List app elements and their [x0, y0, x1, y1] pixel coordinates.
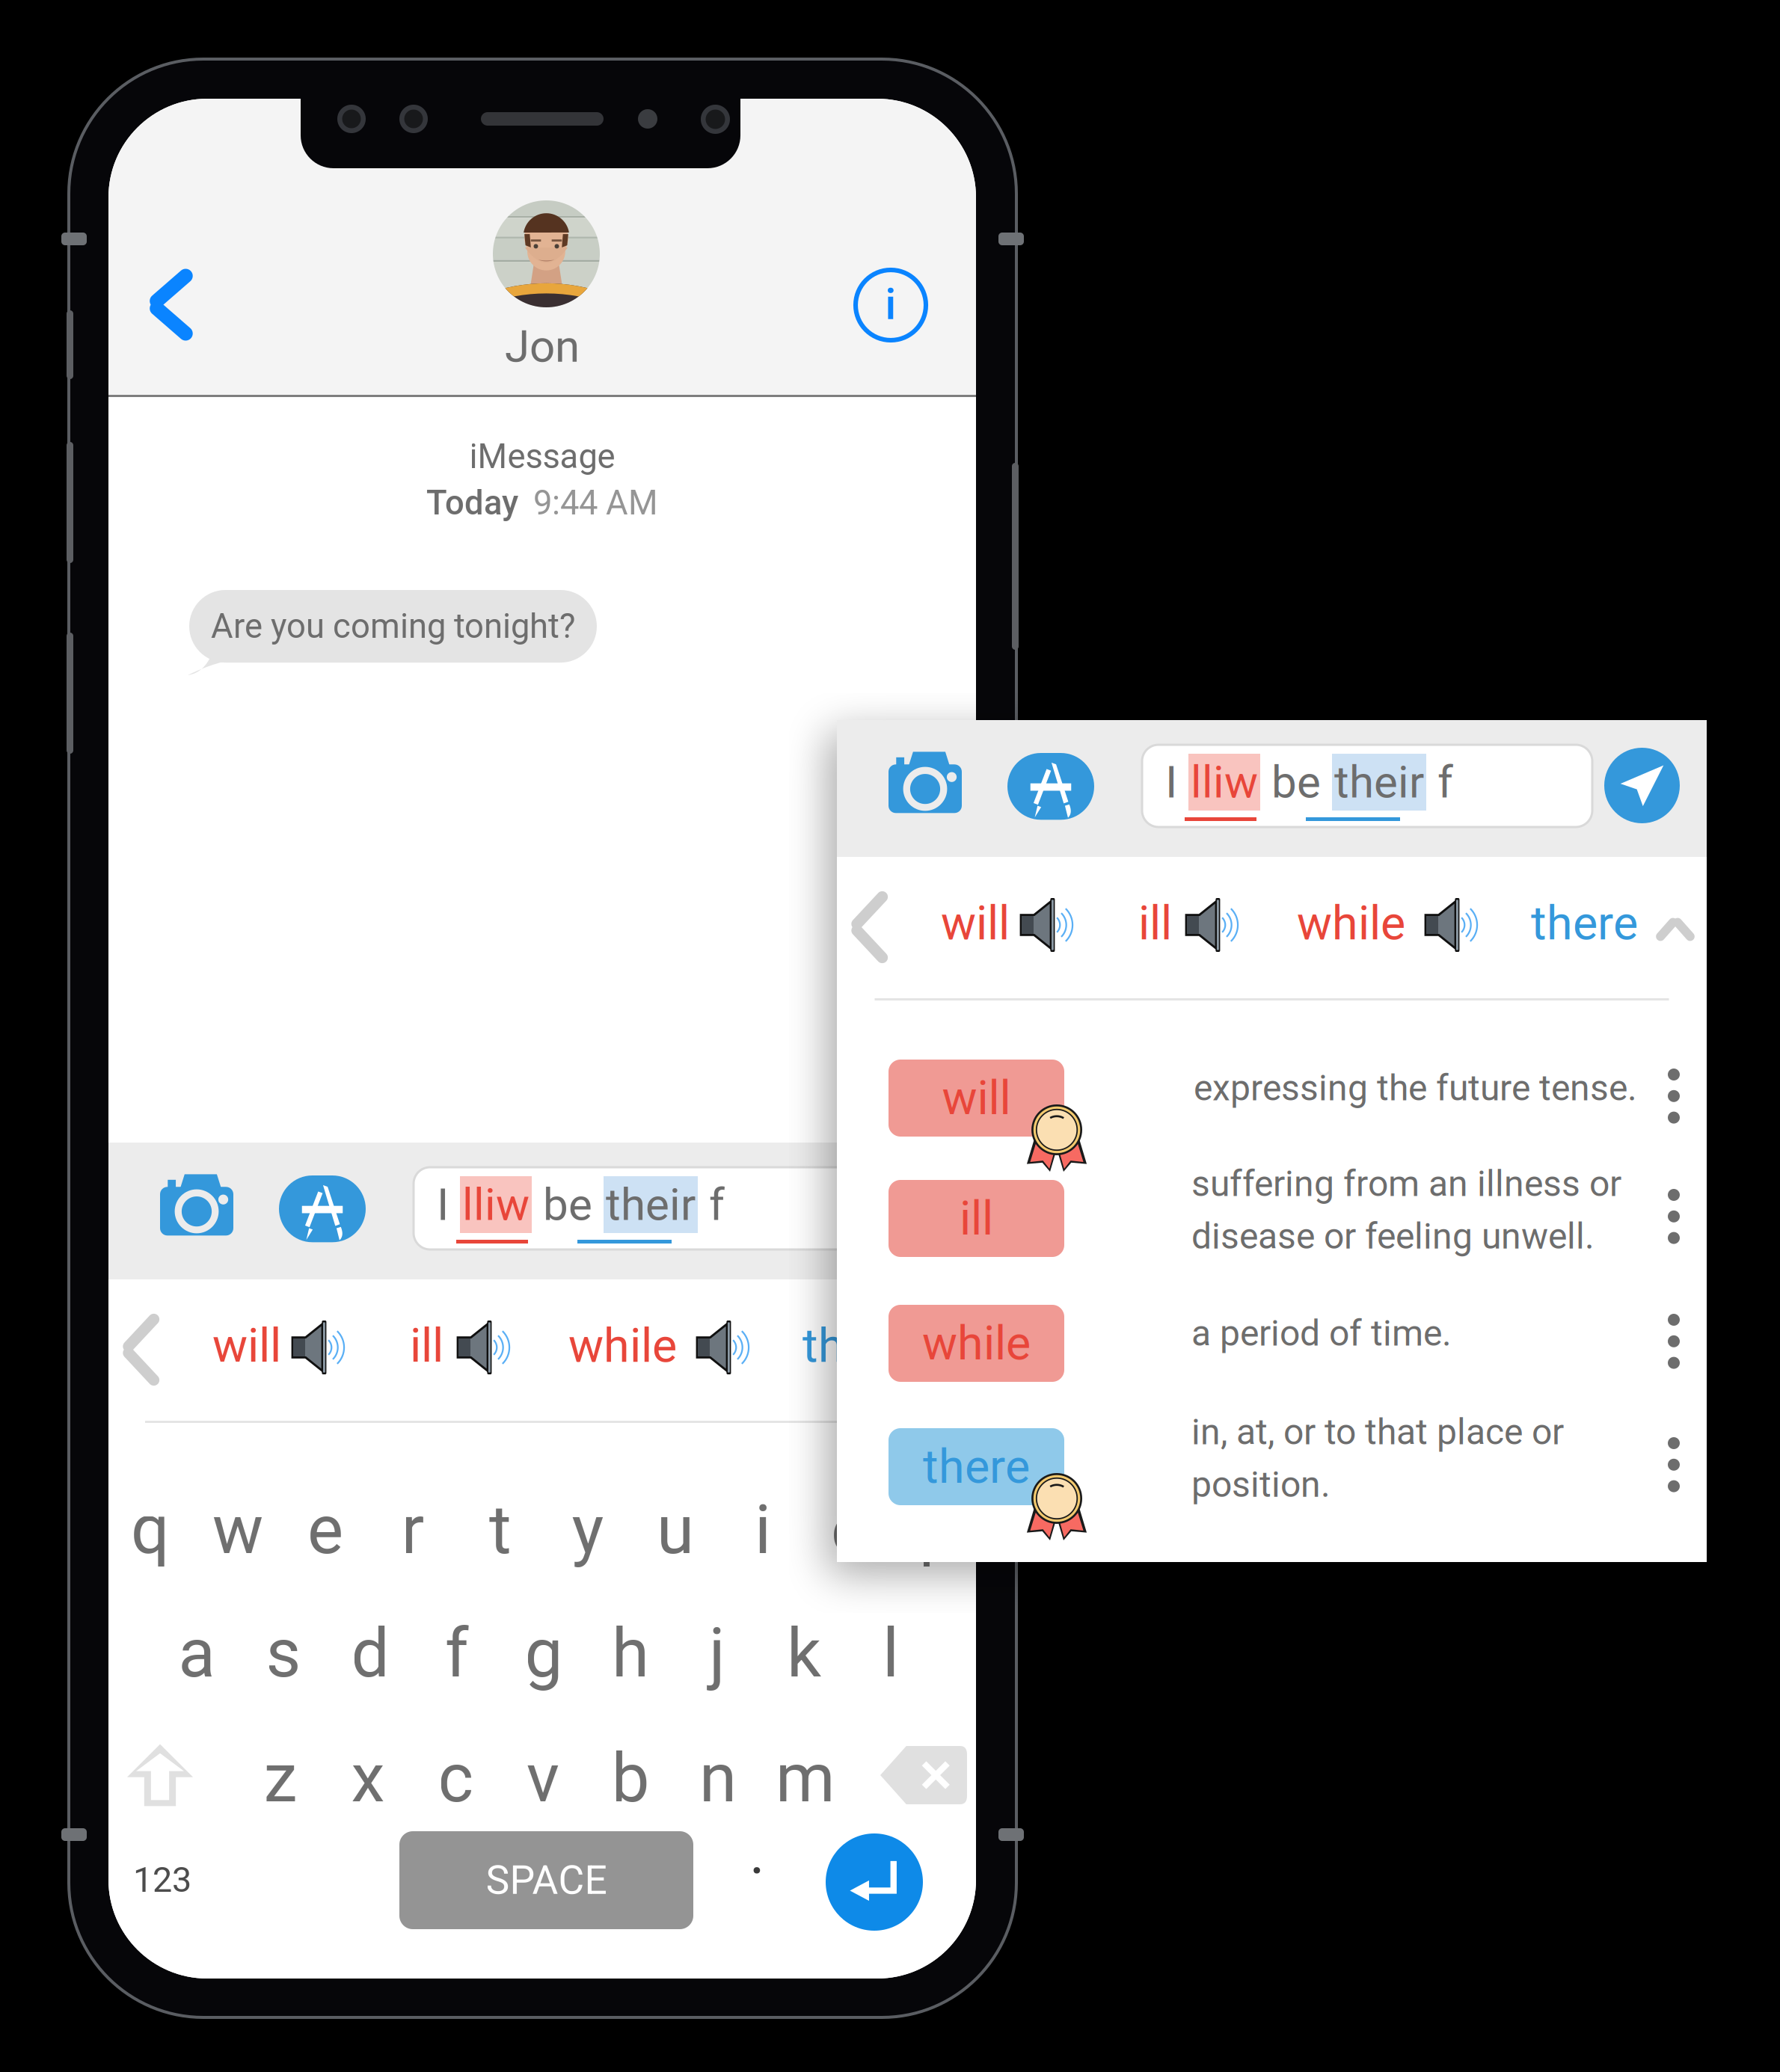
staticText: y	[572, 1490, 604, 1570]
button[interactable]: w	[193, 1487, 283, 1573]
staticText: I	[1165, 756, 1188, 808]
staticText: Are you coming tonight?	[211, 606, 575, 646]
button[interactable]: g	[499, 1610, 589, 1697]
staticText: be	[532, 1178, 604, 1231]
button[interactable]: k	[759, 1610, 849, 1697]
staticText: SPACE	[486, 1857, 607, 1904]
staticText: 123	[133, 1859, 191, 1900]
staticText: q	[131, 1490, 170, 1570]
staticText: r	[401, 1490, 424, 1570]
staticText: Today	[426, 483, 518, 523]
button[interactable]: Camera	[150, 1163, 244, 1246]
staticText: a	[178, 1614, 215, 1693]
staticText: u	[657, 1490, 694, 1570]
staticText: there	[802, 1318, 909, 1373]
staticText: z	[264, 1738, 297, 1818]
staticText: will	[941, 896, 1010, 951]
staticText: while	[1297, 896, 1405, 951]
button[interactable]: y	[543, 1487, 633, 1573]
button[interactable]: c	[411, 1735, 500, 1822]
staticText: their	[1334, 756, 1424, 808]
button[interactable]: 123	[102, 1835, 222, 1925]
staticText: be	[1260, 756, 1332, 808]
button[interactable]: ·	[734, 1827, 779, 1916]
button[interactable]: x	[323, 1735, 413, 1822]
button[interactable]: b	[586, 1735, 675, 1822]
button[interactable]: r	[368, 1487, 458, 1573]
staticText: ·	[749, 1838, 764, 1905]
staticText: f	[1426, 756, 1453, 808]
button[interactable]: Send	[1063, 1170, 1138, 1246]
staticText: a period of time.	[1191, 1312, 1452, 1354]
button[interactable]: a	[152, 1610, 242, 1697]
button[interactable]: i	[718, 1487, 808, 1573]
staticText: ill	[960, 1191, 993, 1246]
button[interactable]: p	[893, 1487, 983, 1573]
staticText: their	[606, 1178, 696, 1231]
staticText: position.	[1191, 1463, 1331, 1506]
staticText: lliw	[1191, 756, 1258, 808]
staticText: m	[776, 1738, 835, 1818]
staticText: i	[755, 1490, 771, 1570]
staticText: there	[1531, 896, 1638, 951]
button[interactable]: Shift	[111, 1727, 209, 1824]
button[interactable]: s	[239, 1610, 328, 1697]
staticText: while	[568, 1318, 677, 1373]
button[interactable]: m	[761, 1735, 850, 1822]
button[interactable]: e	[280, 1487, 370, 1573]
button[interactable]: l	[846, 1610, 936, 1697]
staticText: will	[942, 1071, 1011, 1126]
staticText: d	[351, 1614, 389, 1693]
button[interactable]: Camera	[878, 741, 972, 823]
button[interactable]: o	[805, 1487, 895, 1573]
staticText: expressing the future tense.	[1194, 1067, 1637, 1109]
button[interactable]: d	[325, 1610, 415, 1697]
button[interactable]: SPACE	[399, 1831, 693, 1929]
button[interactable]: Details	[831, 245, 951, 365]
button[interactable]: Send	[1604, 748, 1680, 823]
button[interactable]: t	[455, 1487, 545, 1573]
staticText: ill	[410, 1318, 444, 1373]
button[interactable]: n	[673, 1735, 763, 1822]
staticText: p	[919, 1490, 957, 1570]
staticText: t	[489, 1490, 512, 1570]
staticText: k	[787, 1614, 821, 1693]
staticText: e	[307, 1490, 343, 1570]
staticText: v	[527, 1738, 559, 1818]
staticText: iMessage	[469, 437, 615, 476]
button[interactable]: u	[630, 1487, 720, 1573]
staticText: c	[438, 1738, 473, 1818]
staticText: in, at, or to that place or	[1191, 1411, 1564, 1453]
button[interactable]: Back	[130, 242, 227, 367]
staticText: while	[922, 1316, 1031, 1371]
staticText: j	[709, 1614, 725, 1693]
button[interactable]: Apps	[998, 744, 1103, 829]
staticText: s	[266, 1614, 301, 1693]
button[interactable]: q	[105, 1487, 195, 1573]
button[interactable]: h	[586, 1610, 675, 1697]
staticText: x	[351, 1738, 385, 1818]
button[interactable]: z	[236, 1735, 325, 1822]
staticText: f	[698, 1178, 725, 1231]
staticText: there	[923, 1439, 1030, 1494]
staticText: will	[212, 1318, 281, 1373]
staticText: lliw	[462, 1178, 530, 1231]
staticText: Jon	[505, 320, 580, 373]
staticText: suffering from an illness or	[1191, 1163, 1621, 1205]
staticText: b	[611, 1738, 650, 1818]
staticText: ill	[1138, 896, 1172, 951]
staticText: h	[612, 1614, 649, 1693]
staticText: n	[699, 1738, 737, 1818]
staticText: g	[525, 1614, 563, 1693]
staticText: o	[831, 1490, 870, 1570]
staticText: f	[445, 1614, 469, 1693]
button[interactable]: Apps	[270, 1166, 375, 1251]
staticText: l	[883, 1614, 899, 1693]
button[interactable]: f	[412, 1610, 502, 1697]
button[interactable]: v	[498, 1735, 588, 1822]
staticText: 9:44 AM	[533, 483, 658, 523]
button[interactable]: j	[672, 1610, 762, 1697]
staticText: w	[212, 1490, 263, 1570]
button[interactable]: Delete	[875, 1727, 972, 1824]
button[interactable]: Return	[826, 1833, 923, 1931]
